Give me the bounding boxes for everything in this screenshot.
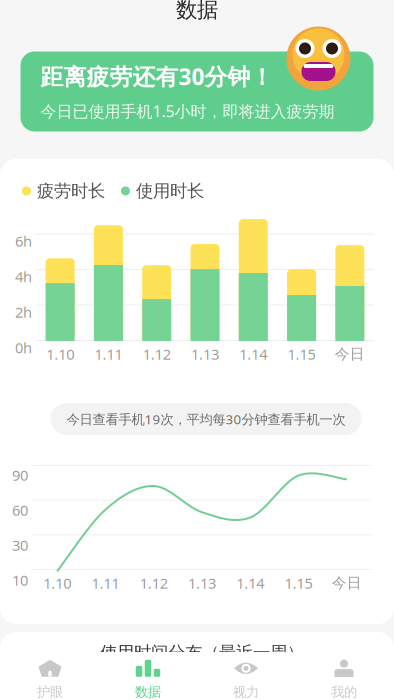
staticText: 1.11 xyxy=(94,344,122,364)
staticText: 1.15 xyxy=(285,573,313,593)
staticText: 距离疲劳还有30分钟！ xyxy=(40,61,273,91)
staticText: 6h xyxy=(15,231,32,251)
staticText: 数据 xyxy=(135,684,161,700)
staticText: 0h xyxy=(15,338,32,357)
staticText: 1.11 xyxy=(91,573,119,593)
staticText: 1.10 xyxy=(43,573,71,593)
staticText: 4h xyxy=(15,267,32,286)
staticText: 90 xyxy=(12,465,28,485)
staticText: 数据 xyxy=(176,0,218,23)
staticText: 10 xyxy=(12,570,28,590)
staticText: 今日已使用手机1.5小时，即将进入疲劳期 xyxy=(40,100,334,122)
staticText: 护眼 xyxy=(37,684,63,700)
staticText: 30 xyxy=(12,535,28,555)
staticText: 今日查看手机19次，平均每30分钟查看手机一次 xyxy=(66,410,345,428)
staticText: 1.15 xyxy=(288,344,316,364)
staticText: 使用时长 xyxy=(136,180,204,202)
button[interactable]: 视力 xyxy=(197,652,295,700)
staticText: 1.10 xyxy=(46,344,74,364)
staticText: 2h xyxy=(15,302,32,322)
staticText: 1.13 xyxy=(191,344,219,364)
button[interactable]: 数据 xyxy=(99,652,197,700)
staticText: 使用时间分布（最近一周） xyxy=(100,642,304,663)
staticText: 1.14 xyxy=(236,573,264,593)
staticText: 视力 xyxy=(233,684,259,700)
button[interactable]: 护眼 xyxy=(1,652,99,700)
staticText: 60 xyxy=(12,500,28,520)
button[interactable]: 我的 xyxy=(295,652,393,700)
staticText: 1.13 xyxy=(188,573,216,593)
staticText: 1.12 xyxy=(143,344,171,364)
staticText: 1.12 xyxy=(140,573,168,593)
staticText: 今日 xyxy=(335,345,365,363)
staticText: 疲劳时长 xyxy=(37,180,105,202)
staticText: 我的 xyxy=(331,684,357,700)
staticText: 1.14 xyxy=(239,344,267,364)
staticText: 今日 xyxy=(332,574,362,592)
